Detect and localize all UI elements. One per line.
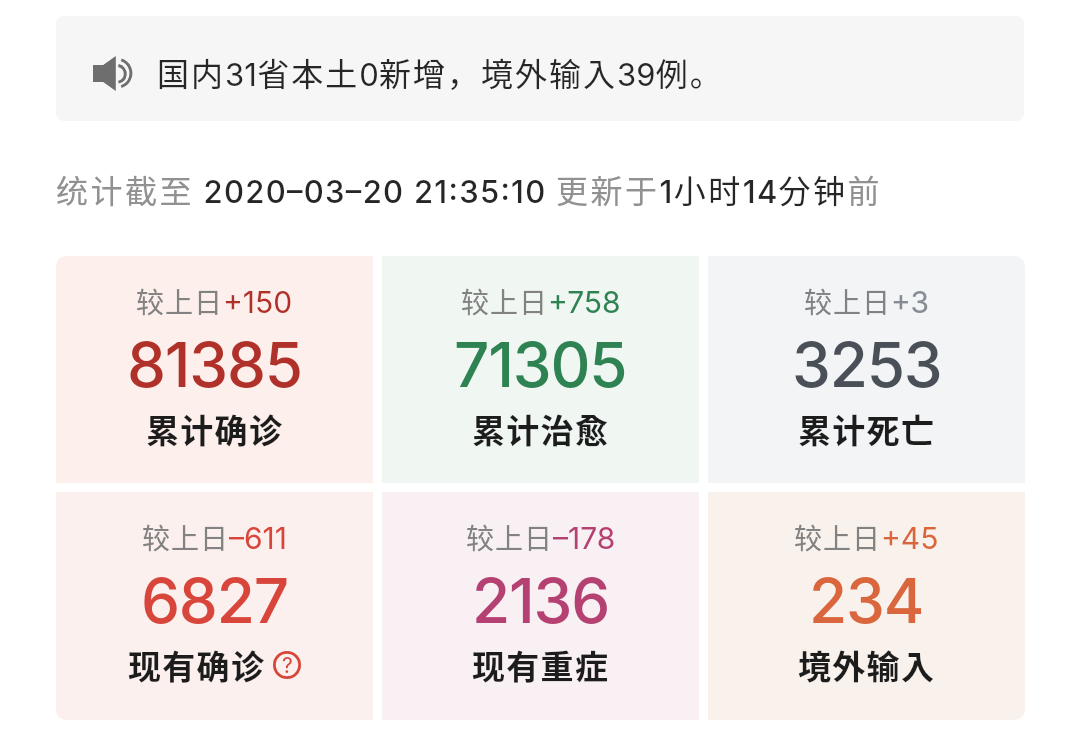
staticText: 国内31省本土0新增，境外输入39例。	[157, 49, 724, 95]
staticText: 71305	[454, 327, 627, 402]
staticText: 较上日+3	[804, 281, 930, 322]
button[interactable]: 较上日+758	[382, 256, 699, 483]
staticText: 较上日+45	[794, 517, 939, 558]
staticText: 较上日+150	[136, 281, 293, 322]
button[interactable]: 较上日+150	[56, 256, 373, 483]
button[interactable]: 较上日+45	[708, 492, 1025, 720]
staticText: 累计确诊	[146, 405, 284, 453]
staticText: 3253	[792, 327, 942, 402]
staticText: 较上日–178	[466, 517, 616, 558]
staticText: 较上日+758	[461, 281, 621, 322]
button[interactable]: 较上日–178	[382, 492, 699, 720]
staticText: ?	[282, 653, 293, 678]
staticText: 现有重症	[472, 641, 610, 689]
button[interactable]: Announcement	[56, 16, 1024, 121]
staticText: 累计死亡	[798, 405, 936, 453]
button[interactable]: 较上日+3	[708, 256, 1025, 483]
button[interactable]: 较上日–611	[56, 492, 373, 720]
staticText: 境外输入	[798, 641, 936, 689]
staticText: 6827	[141, 563, 288, 638]
button[interactable]: What is this	[273, 651, 301, 679]
staticText: 2136	[472, 563, 610, 638]
staticText: 234	[809, 563, 924, 638]
staticText: 较上日–611	[142, 517, 288, 558]
staticText: 81385	[127, 327, 302, 402]
staticText: 统计截至 2020–03–20 21:35:10 更新于1小时14分钟前	[56, 166, 883, 212]
button[interactable]: Announcement	[93, 56, 131, 92]
staticText: 现有确诊	[128, 641, 266, 689]
staticText: 累计治愈	[472, 405, 610, 453]
